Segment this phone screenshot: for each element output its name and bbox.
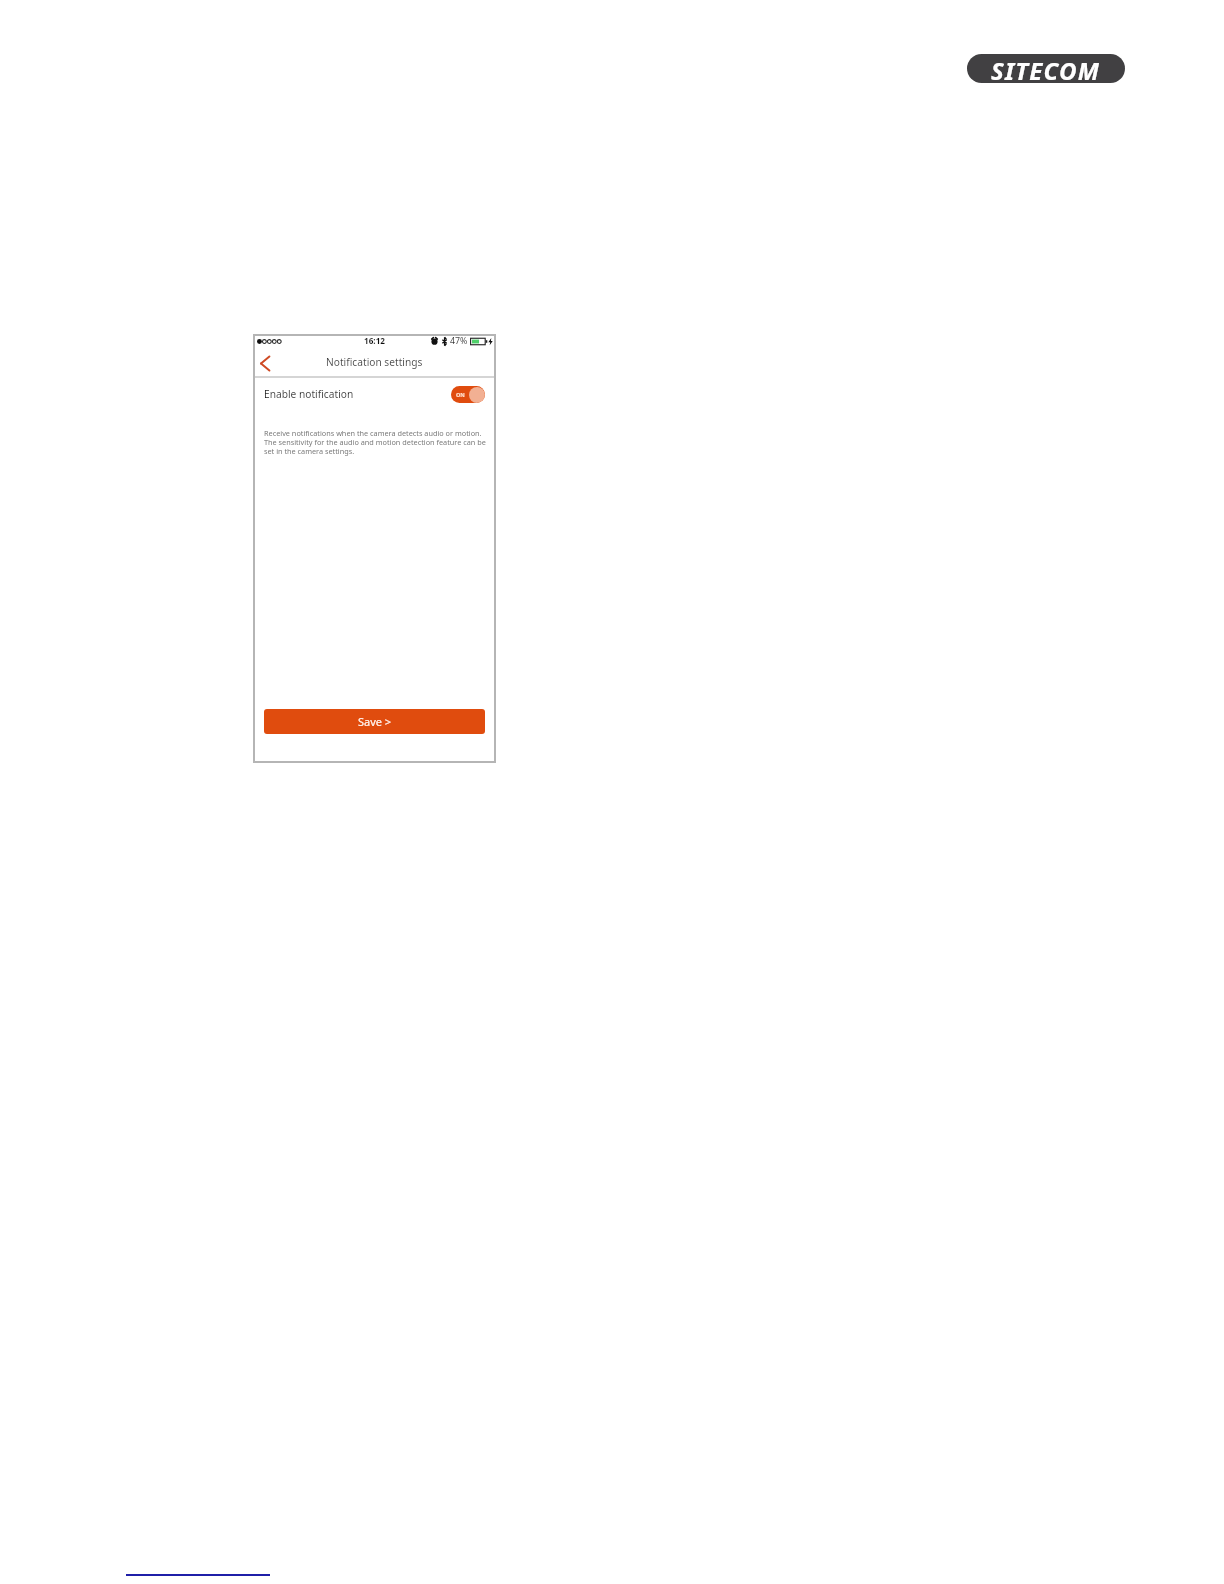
staticText: Notification settings	[326, 355, 423, 369]
staticText: 47%	[450, 335, 468, 347]
staticText: Enable notification	[264, 387, 354, 401]
button[interactable]: Save >	[264, 709, 485, 734]
staticText: 16:12	[364, 335, 386, 346]
button[interactable]: Enable notification	[253, 378, 496, 410]
button[interactable]: Back	[253, 351, 277, 375]
staticText: Save >	[358, 714, 392, 729]
staticText: ON	[456, 391, 465, 398]
button[interactable]: Enable notification toggle	[451, 386, 485, 403]
staticText: SITECOM	[991, 54, 1101, 83]
staticText: Receive notifications when the camera de…	[264, 428, 486, 456]
